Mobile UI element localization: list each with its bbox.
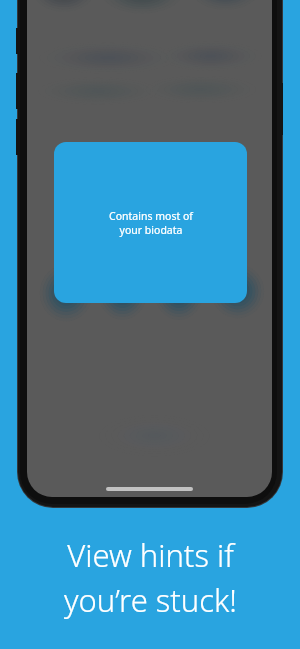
button[interactable]: Contains most of your biodata [54, 142, 247, 303]
staticText: Contains most of your biodata [109, 209, 193, 237]
staticText: View hints if you’re stuck! [64, 534, 237, 621]
